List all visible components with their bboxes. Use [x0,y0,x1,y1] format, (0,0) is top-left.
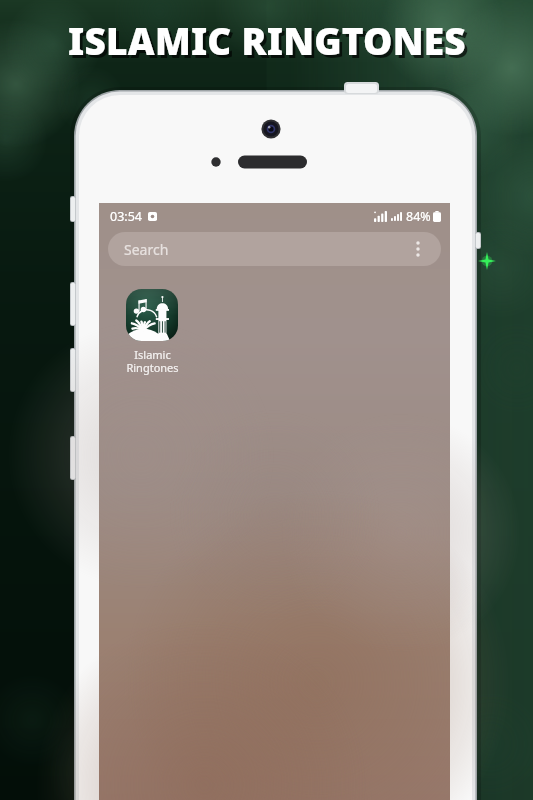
staticText: 84% [406,208,431,225]
staticText: ISLAMIC RINGTONES [71,18,469,68]
button[interactable]: Search [108,232,441,266]
staticText: 03:54 [110,208,142,225]
button[interactable]: Islamic Ringtones [112,287,192,377]
staticText: ISLAMIC RINGTONES [68,15,466,65]
staticText: Search [124,240,169,259]
button[interactable]: More options [407,238,429,260]
staticText: Islamic Ringtones [126,347,179,375]
